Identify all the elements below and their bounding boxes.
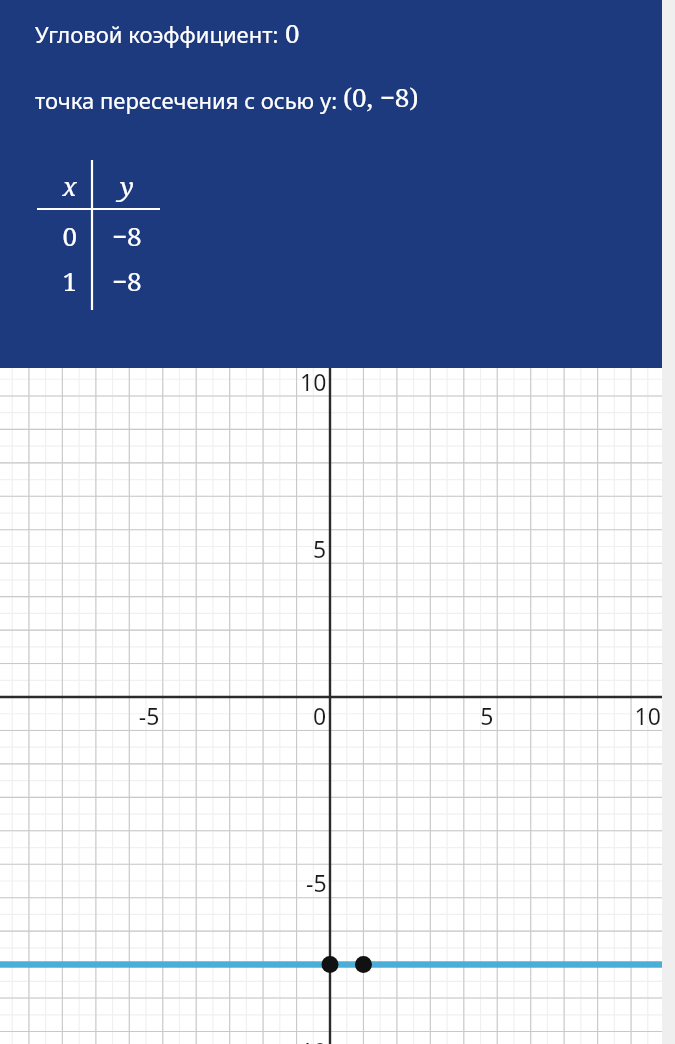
button[interactable] — [0, 0, 675, 1044]
